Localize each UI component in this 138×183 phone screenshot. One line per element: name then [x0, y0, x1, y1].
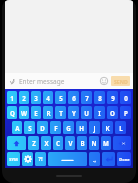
- staticText: W: [21, 109, 27, 117]
- staticText: Q: [10, 109, 15, 117]
- button[interactable]: Z: [28, 136, 39, 150]
- button[interactable]: E: [31, 106, 41, 119]
- button[interactable]: I: [94, 106, 105, 119]
- button[interactable]: 5: [55, 91, 66, 104]
- button[interactable]: SEND: [111, 76, 130, 86]
- button[interactable]: Done: [117, 152, 131, 166]
- button[interactable]: Emoji: [99, 76, 109, 86]
- staticText: F: [54, 124, 58, 132]
- staticText: O: [110, 109, 115, 117]
- staticText: .,: [93, 156, 96, 163]
- button[interactable]: A: [12, 121, 22, 134]
- button[interactable]: 4: [43, 91, 53, 104]
- button[interactable]: G: [63, 121, 74, 134]
- button[interactable]: S: [24, 121, 35, 134]
- button[interactable]: 0: [120, 91, 131, 104]
- staticText: 3: [34, 94, 38, 102]
- staticText: L: [119, 124, 123, 132]
- staticText: 6: [72, 94, 76, 102]
- staticText: V: [68, 139, 73, 147]
- button[interactable]: J: [89, 121, 100, 134]
- button[interactable]: O: [107, 106, 118, 119]
- button[interactable]: X: [41, 136, 51, 150]
- button[interactable]: M: [101, 136, 111, 150]
- button[interactable]: H: [76, 121, 87, 134]
- button[interactable]: P: [120, 106, 131, 119]
- staticText: H: [79, 124, 84, 132]
- staticText: Z: [32, 139, 36, 147]
- button[interactable]: W: [19, 106, 29, 119]
- button[interactable]: Space: [48, 152, 87, 166]
- button[interactable]: Backspace: [113, 136, 131, 150]
- button[interactable]: SYM: [7, 152, 20, 166]
- staticText: J: [93, 124, 96, 132]
- button[interactable]: Enter: [102, 152, 115, 166]
- staticText: S: [28, 124, 32, 132]
- button[interactable]: .,: [89, 152, 100, 166]
- button[interactable]: Enter message: [19, 73, 99, 89]
- staticText: Enter message: [19, 77, 65, 86]
- staticText: SYM: [9, 157, 18, 162]
- button[interactable]: 3: [31, 91, 41, 104]
- staticText: A: [15, 124, 20, 132]
- button[interactable]: C: [53, 136, 63, 150]
- button[interactable]: R: [43, 106, 53, 119]
- button[interactable]: 9: [107, 91, 118, 104]
- button[interactable]: T: [55, 106, 66, 119]
- button[interactable]: U: [81, 106, 92, 119]
- staticText: M: [103, 139, 109, 147]
- staticText: Y: [72, 109, 76, 117]
- staticText: Done: [119, 157, 130, 162]
- button[interactable]: Settings: [22, 152, 33, 166]
- staticText: 0: [124, 94, 128, 102]
- button[interactable]: 8: [94, 91, 105, 104]
- staticText: 1: [10, 94, 14, 102]
- staticText: 4: [46, 94, 50, 102]
- staticText: D: [40, 124, 45, 132]
- staticText: P: [124, 109, 128, 117]
- button[interactable]: F: [50, 121, 61, 134]
- staticText: 8: [98, 94, 102, 102]
- staticText: E: [34, 109, 38, 117]
- button[interactable]: L: [115, 121, 126, 134]
- staticText: 7: [85, 94, 89, 102]
- button[interactable]: 2: [19, 91, 29, 104]
- staticText: R: [46, 109, 51, 117]
- staticText: C: [56, 139, 60, 147]
- button[interactable]: N: [89, 136, 99, 150]
- button[interactable]: B: [77, 136, 87, 150]
- staticText: SEND: [114, 78, 128, 85]
- button[interactable]: Q: [7, 106, 17, 119]
- staticText: T: [59, 109, 63, 117]
- staticText: N: [91, 139, 97, 147]
- staticText: K: [105, 124, 110, 132]
- button[interactable]: Shift: [7, 136, 26, 150]
- button[interactable]: ?!: [35, 152, 46, 166]
- staticText: 2: [22, 94, 26, 102]
- button[interactable]: Attach: [8, 77, 17, 86]
- button[interactable]: 6: [68, 91, 79, 104]
- staticText: ?!: [38, 155, 43, 163]
- staticText: 5: [59, 94, 63, 102]
- button[interactable]: 7: [81, 91, 92, 104]
- staticText: U: [84, 109, 89, 117]
- button[interactable]: K: [102, 121, 113, 134]
- staticText: B: [80, 139, 85, 147]
- staticText: I: [98, 109, 101, 117]
- button[interactable]: Y: [68, 106, 79, 119]
- button[interactable]: D: [37, 121, 48, 134]
- staticText: X: [44, 139, 49, 147]
- staticText: 9: [111, 94, 115, 102]
- button[interactable]: V: [65, 136, 75, 150]
- staticText: G: [66, 124, 71, 132]
- button[interactable]: 1: [7, 91, 17, 104]
